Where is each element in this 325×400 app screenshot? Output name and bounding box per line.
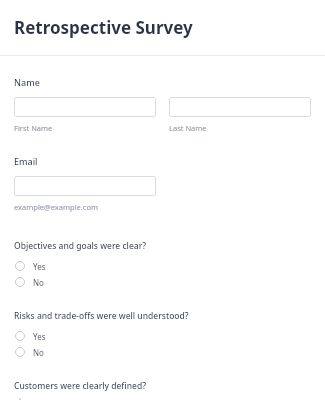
staticText: Email: [14, 155, 38, 167]
button[interactable]: Yes: [14, 398, 311, 400]
staticText: example@example.com: [14, 202, 98, 212]
staticText: Name: [14, 76, 40, 88]
staticText: Objectives and goals were clear?: [14, 240, 147, 252]
staticText: Last Name: [169, 123, 207, 133]
button[interactable]: [169, 97, 311, 117]
button[interactable]: No: [14, 344, 311, 360]
button[interactable]: [14, 176, 156, 196]
button[interactable]: Yes: [14, 258, 311, 274]
button[interactable]: Yes: [14, 328, 311, 344]
staticText: Yes: [33, 261, 46, 272]
staticText: Customers were clearly defined?: [14, 380, 146, 392]
staticText: Risks and trade-offs were well understoo…: [14, 310, 189, 322]
staticText: First Name: [14, 123, 53, 133]
button[interactable]: [14, 97, 156, 117]
staticText: Retrospective Survey: [14, 16, 193, 39]
button[interactable]: No: [14, 274, 311, 290]
staticText: No: [33, 347, 44, 358]
staticText: Yes: [33, 331, 46, 342]
staticText: No: [33, 277, 44, 288]
